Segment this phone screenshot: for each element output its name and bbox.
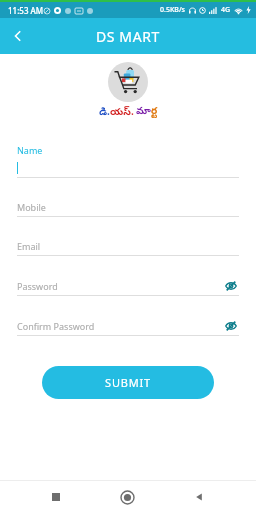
- button[interactable]: Name: [17, 144, 239, 178]
- button[interactable]: Toggle password visibility: [223, 318, 239, 333]
- staticText: DS MART: [96, 27, 160, 46]
- staticText: Mobile: [17, 201, 46, 213]
- button[interactable]: Email: [17, 239, 239, 256]
- staticText: యస్.: [110, 104, 134, 120]
- staticText: Name: [17, 144, 43, 156]
- staticText: డి.: [99, 104, 110, 120]
- button[interactable]: Mobile: [17, 200, 239, 217]
- staticText: మా: [136, 105, 151, 119]
- button[interactable]: SUBMIT: [42, 366, 214, 399]
- button[interactable]: Confirm Password: [17, 318, 239, 336]
- staticText: SUBMIT: [105, 375, 151, 390]
- button[interactable]: Home: [112, 482, 142, 512]
- staticText: 0.5KB/s: [160, 5, 186, 15]
- staticText: ర్ట: [151, 105, 158, 119]
- staticText: 11:53 AM: [8, 5, 44, 16]
- button[interactable]: Toggle password visibility: [223, 278, 239, 293]
- button[interactable]: Recents: [41, 482, 71, 512]
- staticText: Email: [17, 240, 41, 252]
- staticText: 4G: [221, 5, 231, 15]
- staticText: Password: [17, 280, 58, 292]
- button[interactable]: Back: [0, 18, 36, 54]
- staticText: Confirm Password: [17, 320, 95, 332]
- button[interactable]: Back: [184, 482, 214, 512]
- button[interactable]: Password: [17, 278, 239, 296]
